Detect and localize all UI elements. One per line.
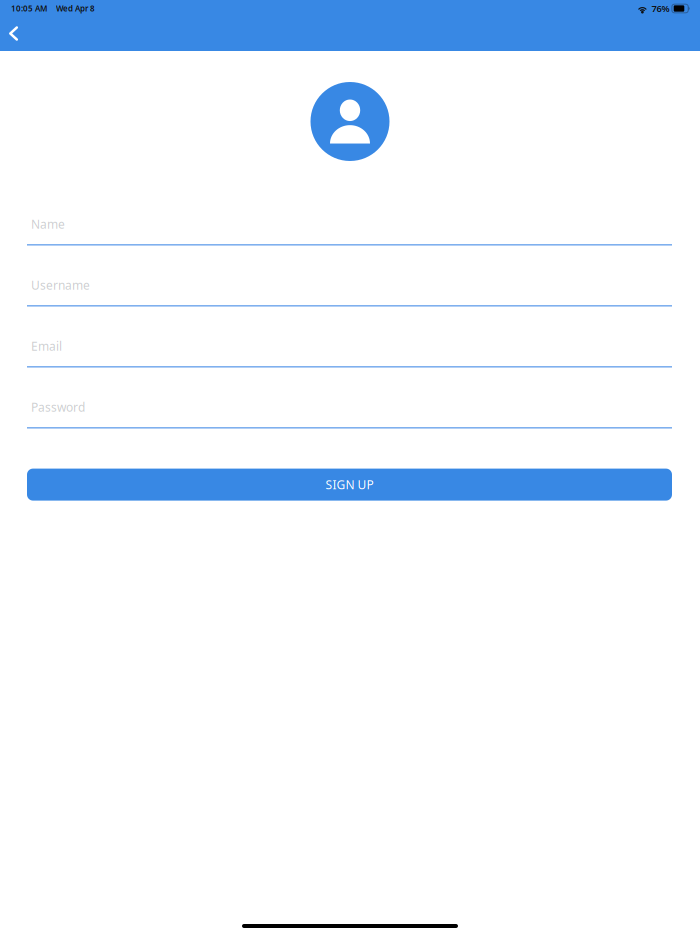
staticText: Password	[31, 399, 85, 415]
button[interactable]: Name	[27, 215, 672, 246]
staticText: Email	[31, 338, 62, 354]
staticText: Wed Apr 8	[56, 3, 95, 14]
staticText: 10:05 AM	[11, 3, 47, 14]
button[interactable]: Back	[0, 17, 30, 51]
staticText: 76%	[651, 2, 669, 15]
staticText: Username	[31, 277, 90, 293]
button[interactable]: Username	[27, 276, 672, 307]
button[interactable]: Email	[27, 337, 672, 368]
button[interactable]: SIGN UP	[27, 469, 672, 501]
staticText: SIGN UP	[325, 477, 373, 492]
button[interactable]: Password	[27, 398, 672, 429]
staticText: Name	[31, 216, 65, 232]
